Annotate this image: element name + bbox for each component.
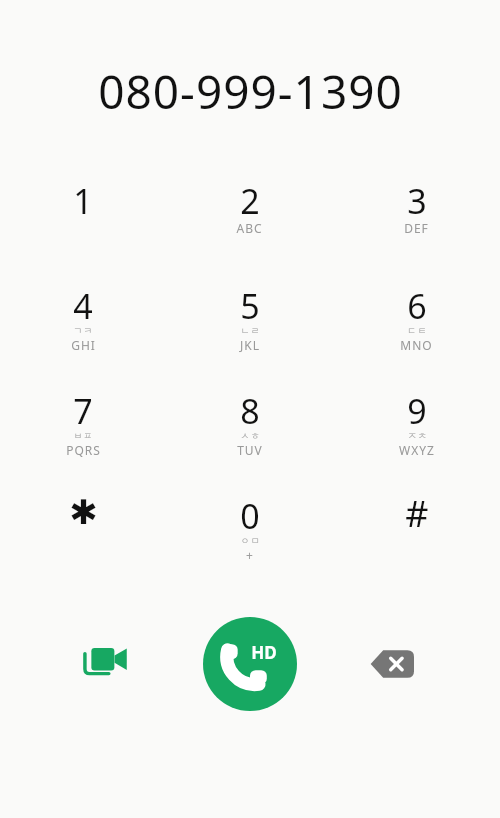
button[interactable]: ✱	[0, 493, 166, 598]
staticText: 8	[240, 388, 260, 434]
button[interactable]: 0	[166, 493, 333, 598]
staticText: ㅇㅁ	[240, 535, 260, 546]
staticText: 3	[407, 178, 427, 224]
staticText: PQRS	[66, 442, 101, 458]
staticText: +	[246, 547, 254, 563]
staticText: ABC	[236, 220, 263, 236]
staticText: 4	[73, 283, 93, 329]
staticText: TUV	[237, 442, 263, 458]
staticText: 7	[73, 388, 93, 434]
button[interactable]: #	[333, 493, 500, 598]
button[interactable]: Backspace	[357, 629, 427, 699]
staticText: ㄴㄹ	[240, 325, 260, 336]
staticText: 080-999-1390	[98, 60, 403, 123]
staticText: DEF	[404, 220, 429, 236]
staticText: 2	[240, 178, 260, 224]
staticText: ㅈㅊ	[407, 430, 427, 441]
staticText: ㄷㅌ	[407, 325, 427, 336]
button[interactable]: Video call	[72, 629, 142, 699]
button[interactable]: 9	[333, 388, 500, 493]
button[interactable]: 4	[0, 283, 166, 388]
staticText: ㄱㅋ	[73, 325, 93, 336]
staticText: 9	[407, 388, 427, 434]
staticText: ✱	[69, 492, 98, 532]
button[interactable]: 1	[0, 178, 166, 283]
staticText: WXYZ	[399, 442, 435, 458]
staticText: 1	[73, 178, 93, 224]
staticText: JKL	[240, 337, 260, 353]
staticText: ㅅㅎ	[240, 430, 260, 441]
staticText: 0	[240, 493, 260, 539]
staticText: GHI	[71, 337, 96, 353]
button[interactable]: 8	[166, 388, 333, 493]
button[interactable]: 6	[333, 283, 500, 388]
staticText: #	[405, 489, 429, 535]
staticText: 5	[240, 283, 260, 329]
button[interactable]: 3	[333, 178, 500, 283]
button[interactable]: 2	[166, 178, 333, 283]
button[interactable]: 7	[0, 388, 166, 493]
staticText: 6	[407, 283, 427, 329]
staticText: ㅂㅍ	[73, 430, 93, 441]
staticText: HD	[251, 641, 277, 664]
button[interactable]: 5	[166, 283, 333, 388]
staticText: MNO	[400, 337, 433, 353]
button[interactable]: Call	[203, 617, 297, 711]
